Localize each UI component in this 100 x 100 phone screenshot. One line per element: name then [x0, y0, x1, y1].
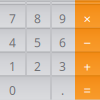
staticText: 0 — [9, 82, 16, 98]
button[interactable]: 8 — [25, 4, 50, 28]
button[interactable]: + — [75, 51, 100, 75]
staticText: 3 — [59, 58, 66, 74]
staticText: 2 — [34, 58, 41, 74]
button[interactable]: 1 — [0, 51, 25, 75]
staticText: × — [83, 10, 91, 27]
staticText: − — [83, 34, 91, 51]
staticText: = — [83, 81, 91, 99]
staticText: 8 — [34, 11, 41, 27]
staticText: 1 — [9, 58, 16, 74]
staticText: + — [83, 57, 91, 75]
staticText: 9 — [59, 11, 66, 27]
button[interactable]: 9 — [50, 4, 75, 28]
staticText: 7 — [9, 11, 16, 27]
button[interactable]: = — [75, 75, 100, 100]
button[interactable] — [0, 0, 25, 4]
button[interactable]: 0 — [0, 75, 50, 100]
button[interactable]: 5 — [25, 28, 50, 51]
button[interactable]: 4 — [0, 28, 25, 51]
button[interactable] — [50, 0, 75, 4]
button[interactable]: 6 — [50, 28, 75, 51]
staticText: 6 — [59, 34, 66, 50]
button[interactable]: . — [50, 75, 75, 100]
button[interactable]: 2 — [25, 51, 50, 75]
button[interactable]: − — [75, 28, 100, 51]
staticText: 4 — [9, 34, 16, 50]
button[interactable] — [25, 0, 50, 4]
staticText: 5 — [34, 34, 41, 50]
button[interactable] — [75, 0, 100, 4]
button[interactable]: 7 — [0, 4, 25, 28]
button[interactable]: × — [75, 4, 100, 28]
staticText: . — [61, 82, 64, 98]
button[interactable]: 3 — [50, 51, 75, 75]
